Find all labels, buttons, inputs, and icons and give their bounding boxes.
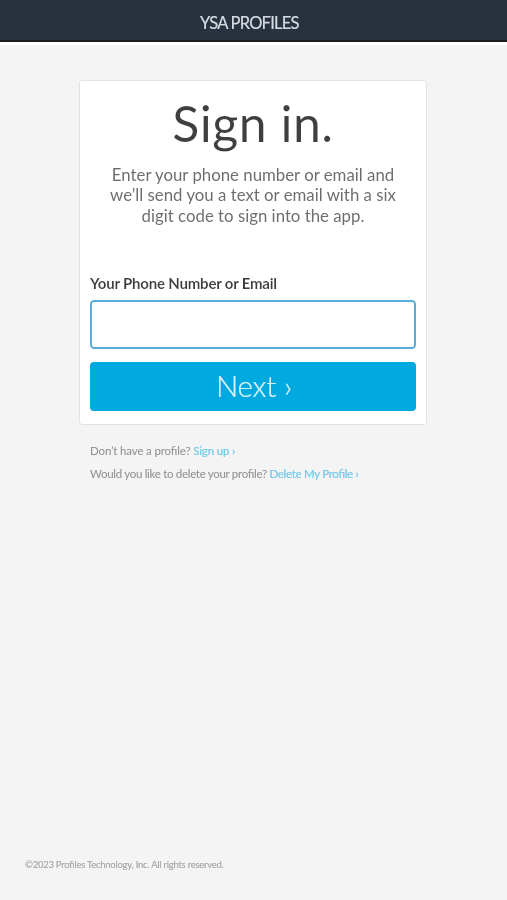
button[interactable]: Next ›: [90, 362, 416, 411]
staticText: Enter your phone number or email and we’…: [97, 164, 409, 226]
staticText: Sign in.: [79, 93, 427, 153]
button[interactable]: Would you like to delete your profile? D…: [90, 467, 359, 481]
staticText: Your Phone Number or Email: [90, 274, 277, 292]
staticText: YSA PROFILES: [200, 13, 299, 33]
button[interactable]: Phone number or email input: [90, 300, 416, 349]
staticText: ©2023 Profiles Technology, Inc. All righ…: [25, 859, 224, 870]
staticText: Next ›: [216, 368, 292, 403]
button[interactable]: Don’t have a profile? Sign up ›: [90, 444, 236, 458]
